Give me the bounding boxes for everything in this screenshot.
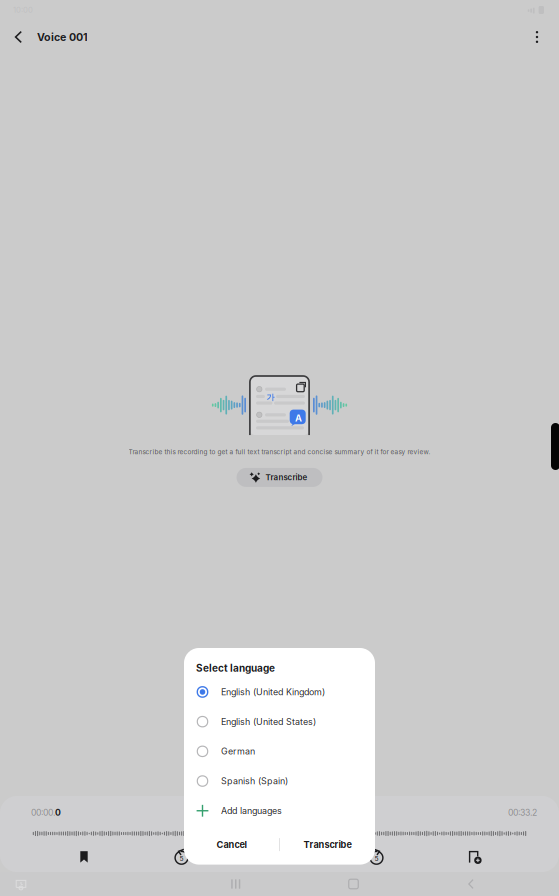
staticText: Transcribe bbox=[265, 473, 307, 482]
button[interactable]: Forward 5 seconds bbox=[357, 848, 395, 866]
staticText: 5 bbox=[374, 855, 378, 863]
staticText: Transcribe this recording to get a full … bbox=[128, 448, 430, 456]
button[interactable]: Spanish (Spain) bbox=[184, 766, 375, 796]
button[interactable]: Home bbox=[323, 872, 383, 896]
staticText: A bbox=[295, 412, 302, 424]
button[interactable]: Add languages bbox=[184, 796, 375, 826]
staticText: 00:33.2 bbox=[508, 807, 537, 818]
staticText: Cancel bbox=[216, 839, 246, 850]
staticText: 00:00. bbox=[31, 807, 55, 818]
button[interactable]: Cancel bbox=[184, 830, 279, 860]
staticText: Add languages bbox=[221, 805, 282, 816]
staticText: 0 bbox=[55, 807, 61, 818]
button[interactable]: Bookmark bbox=[65, 848, 103, 866]
staticText: Voice 001 bbox=[37, 30, 88, 43]
staticText: English (United Kingdom) bbox=[221, 686, 325, 697]
button[interactable]: Back bbox=[6, 24, 32, 50]
staticText: 5 bbox=[179, 855, 183, 863]
button[interactable]: Transcribe bbox=[280, 830, 375, 860]
button[interactable]: Add bookmark bbox=[455, 848, 493, 866]
staticText: Spanish (Spain) bbox=[221, 776, 288, 786]
button[interactable]: More options bbox=[523, 23, 551, 51]
button[interactable]: German bbox=[184, 736, 375, 766]
button[interactable]: English (United States) bbox=[184, 707, 375, 736]
button[interactable]: Recent apps bbox=[206, 872, 266, 896]
staticText: 가 bbox=[267, 392, 275, 402]
button[interactable]: Transcribe bbox=[236, 468, 322, 487]
button[interactable]: Rewind 5 seconds bbox=[162, 848, 200, 866]
button[interactable]: English (United Kingdom) bbox=[184, 677, 375, 707]
staticText: Transcribe bbox=[303, 839, 351, 850]
staticText: Select language bbox=[196, 662, 275, 674]
staticText: English (United States) bbox=[221, 716, 316, 727]
staticText: German bbox=[221, 746, 255, 757]
